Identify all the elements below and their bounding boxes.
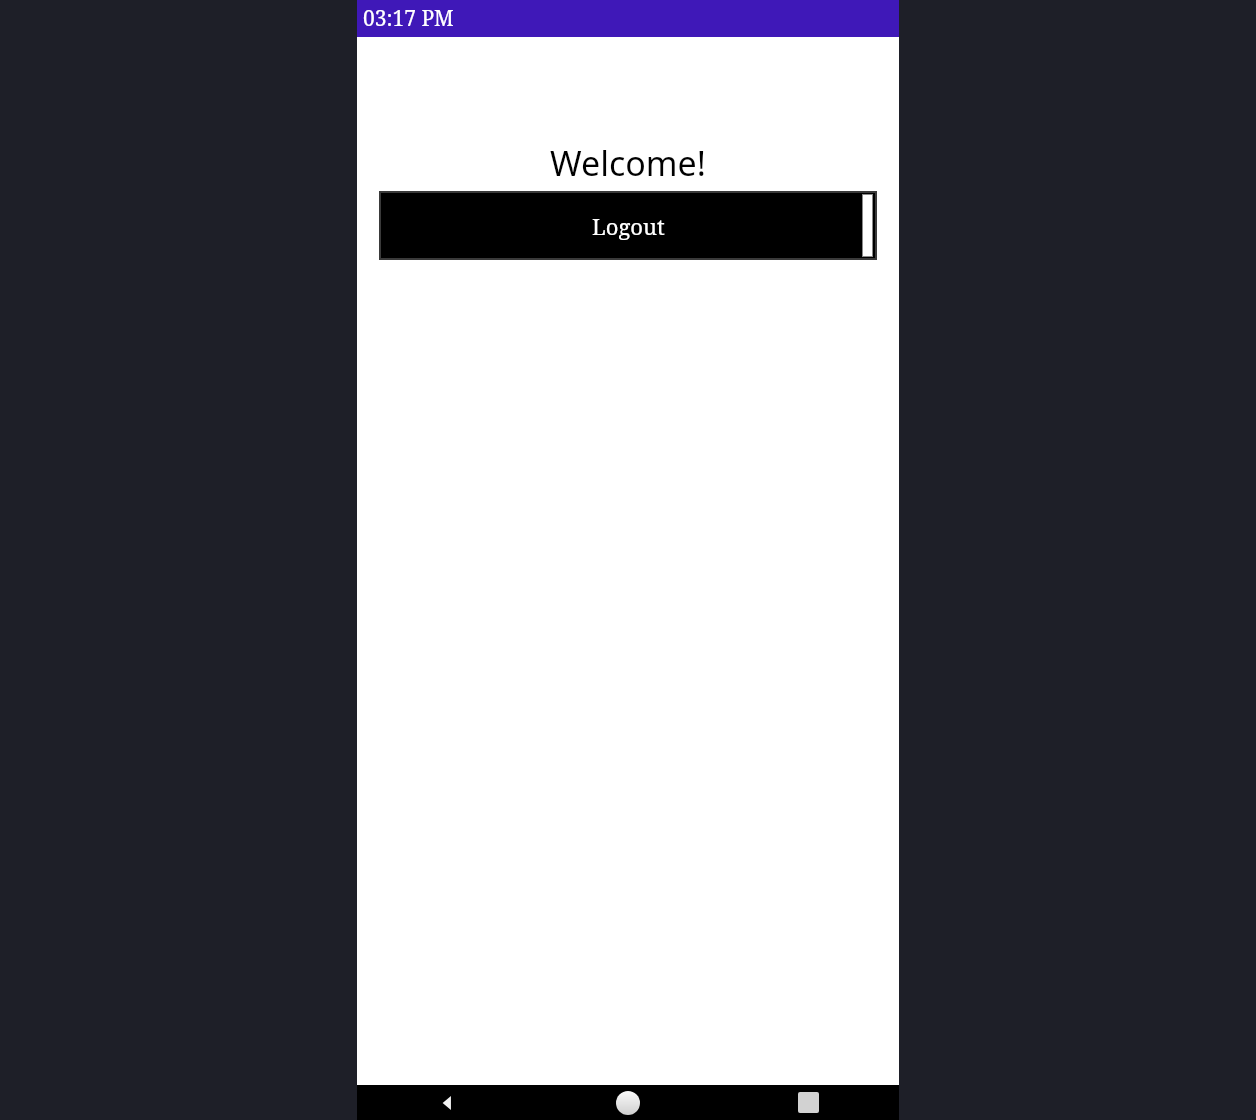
button[interactable]: Recent apps [718,1085,899,1120]
button[interactable]: Home [537,1085,718,1120]
staticText: Logout [592,211,665,241]
staticText: 03:17 PM [363,4,454,33]
button[interactable]: Back [357,1085,537,1120]
staticText: Welcome! [550,140,706,186]
button[interactable]: Logout [379,191,877,260]
